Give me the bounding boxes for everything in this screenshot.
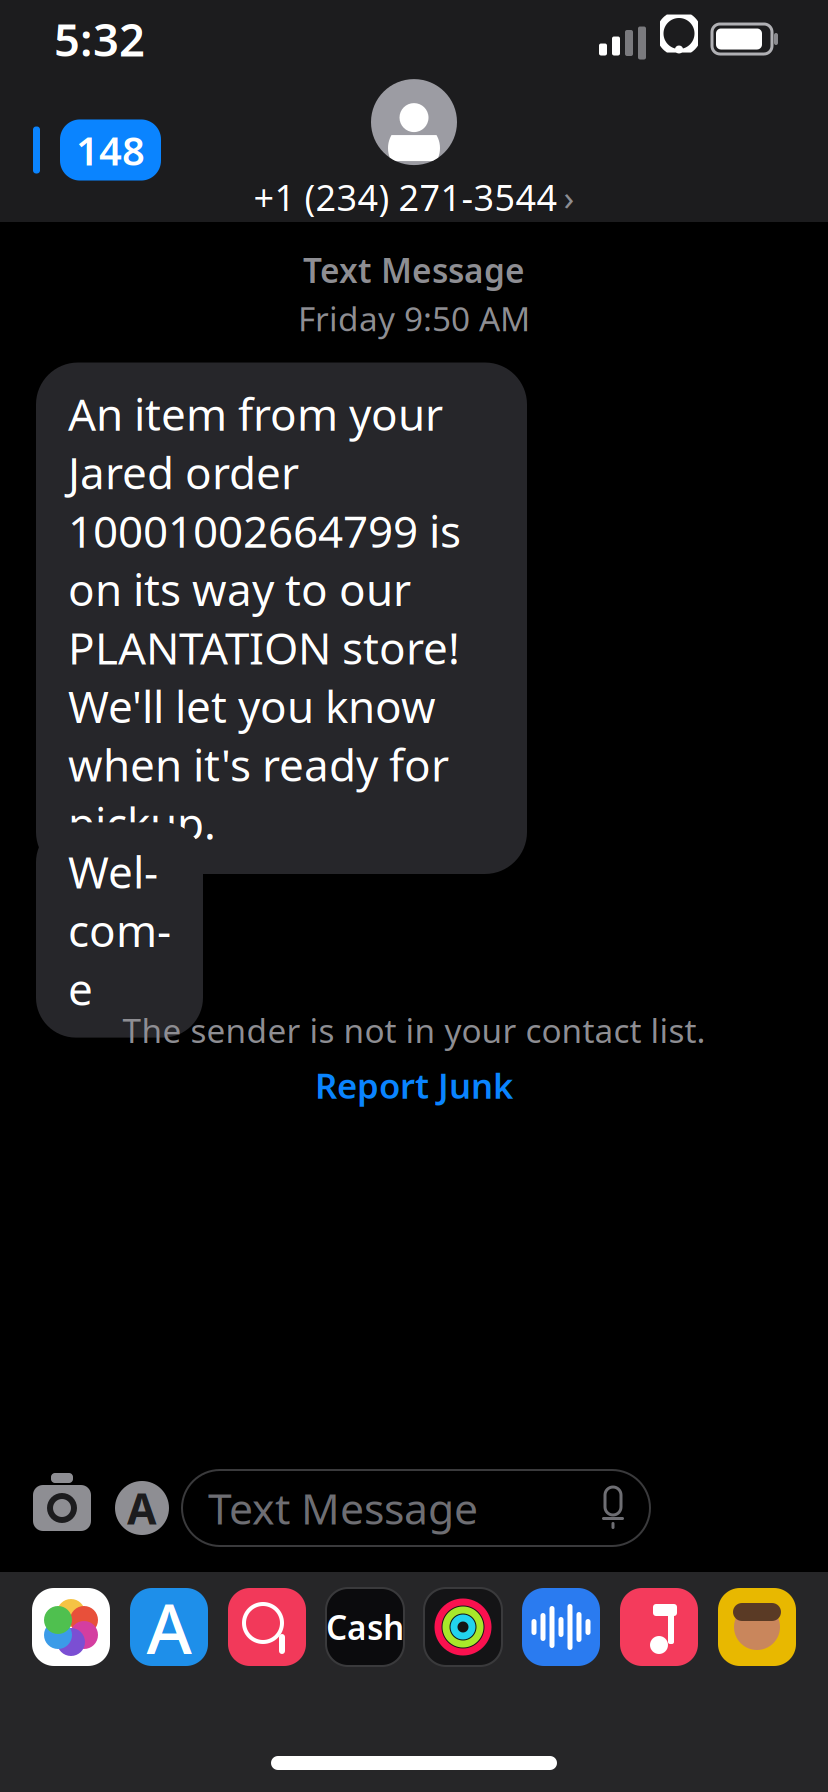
button[interactable]: Text Message	[182, 1470, 650, 1546]
staticText: 148	[76, 123, 145, 176]
staticText: ›	[563, 174, 574, 220]
button[interactable]: 148	[0, 107, 161, 192]
button[interactable]: App Store	[120, 1572, 218, 1682]
staticText: Cash	[326, 1605, 404, 1649]
button[interactable]: Memoji	[708, 1572, 806, 1682]
button[interactable]: Apple Cash	[316, 1572, 414, 1682]
staticText: Friday 9:50 AM	[298, 296, 530, 341]
button[interactable]: Report Junk	[305, 1058, 523, 1112]
staticText: Welcome	[68, 842, 171, 1018]
staticText: Text Message	[208, 1480, 478, 1536]
staticText: A	[127, 1480, 157, 1536]
staticText: Text Message	[303, 248, 525, 292]
button[interactable]: Apps	[102, 1468, 182, 1548]
staticText: A	[146, 1581, 191, 1673]
staticText: An item from your Jared order 1000100266…	[68, 384, 461, 852]
button[interactable]: Photos	[22, 1572, 120, 1682]
staticText: Report Junk	[315, 1062, 513, 1108]
staticText: The sender is not in your contact list.	[122, 1008, 705, 1052]
button[interactable]: Camera	[22, 1468, 102, 1548]
button[interactable]: Music	[610, 1572, 708, 1682]
button[interactable]: Voice Memos	[512, 1572, 610, 1682]
button[interactable]: Activity	[414, 1572, 512, 1682]
button[interactable]: Images	[218, 1572, 316, 1682]
staticText: 5:32	[54, 9, 145, 69]
button[interactable]: +1 (234) 271-3544	[253, 79, 574, 221]
staticText: +1 (234) 271-3544	[253, 173, 557, 221]
